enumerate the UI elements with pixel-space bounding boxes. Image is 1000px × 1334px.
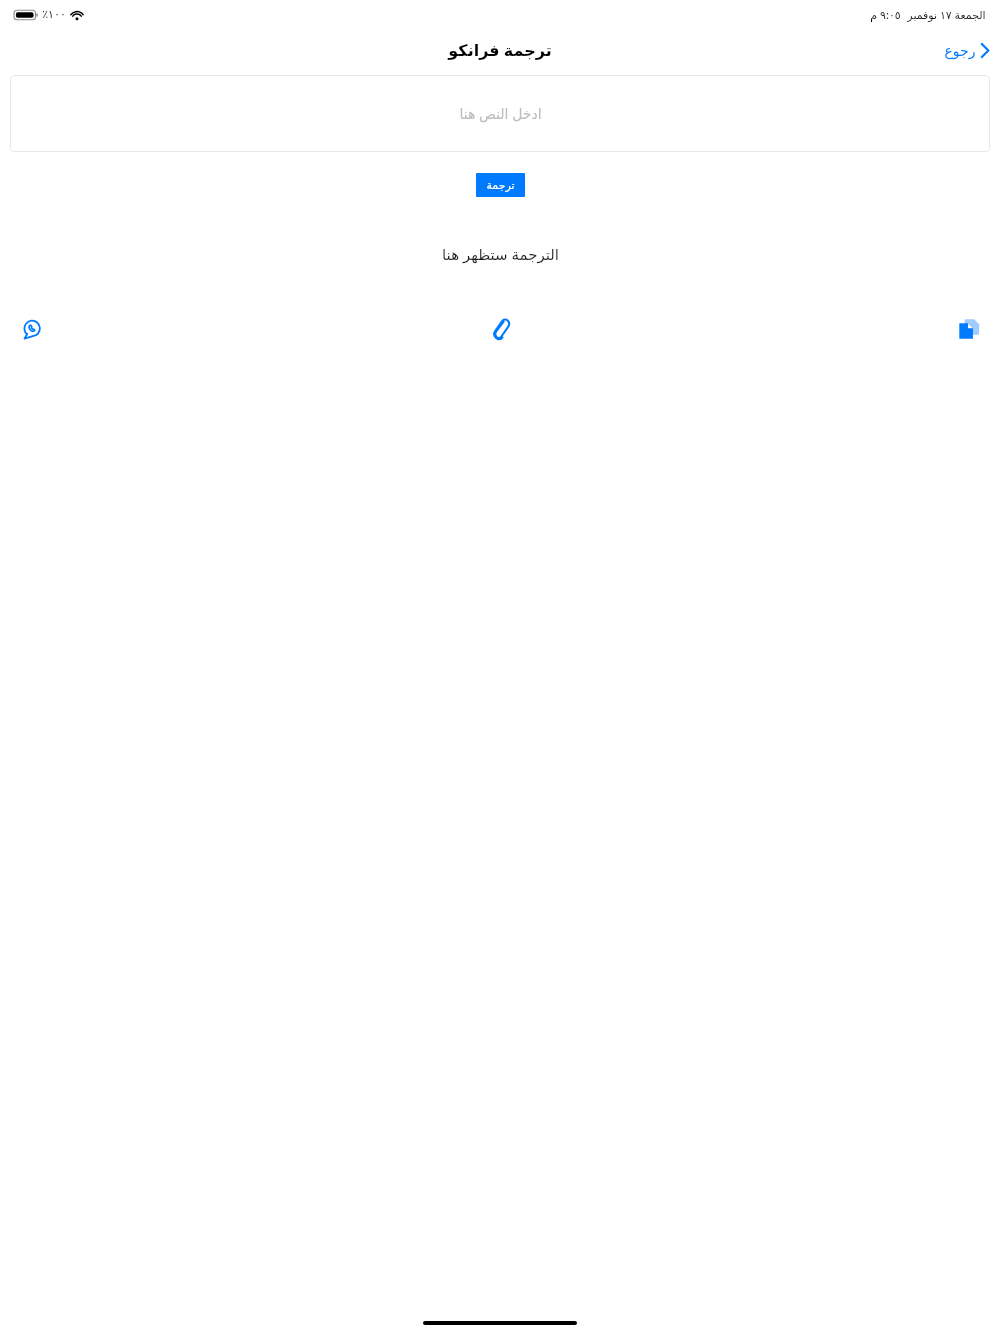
staticText: الترجمة ستظهر هنا [442, 244, 559, 264]
staticText: ٪١٠٠ [42, 8, 66, 21]
button[interactable]: نسخ [958, 318, 980, 340]
button[interactable]: إرفاق [489, 318, 511, 340]
button[interactable]: ادخل النص هنا [10, 75, 990, 152]
staticText: ادخل النص هنا [459, 104, 542, 123]
staticText: ترجمة [486, 179, 515, 192]
staticText: ترجمة فرانكو [448, 39, 552, 61]
button[interactable]: مشاركة عبر واتساب [20, 318, 42, 340]
staticText: رجوع [944, 43, 976, 59]
staticText: ٩:٠٥ م [870, 7, 901, 22]
button[interactable]: رجوع [934, 36, 1000, 65]
other: رجوع [980, 42, 990, 59]
button[interactable]: ترجمة [476, 173, 525, 197]
staticText: الجمعة ١٧ نوفمبر [907, 7, 986, 22]
